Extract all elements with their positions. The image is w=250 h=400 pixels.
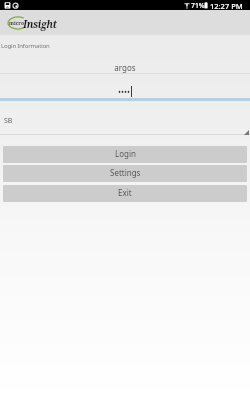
staticText: micro <box>9 20 25 27</box>
staticText: Exit <box>118 187 132 198</box>
button[interactable]: SB <box>0 109 250 135</box>
staticText: Login <box>115 148 136 159</box>
staticText: 12:27 PM <box>210 1 243 11</box>
button[interactable]: •••• <box>0 79 250 101</box>
staticText: Insight <box>23 17 57 31</box>
staticText: SB <box>4 116 13 126</box>
other: Saved <box>4 2 11 9</box>
button[interactable]: Settings <box>3 165 247 182</box>
staticText: argos <box>0 62 250 73</box>
staticText: 71% <box>191 1 205 10</box>
other: Sync <box>12 2 19 9</box>
staticText: Login Information <box>1 42 50 50</box>
staticText: •••• <box>118 86 131 97</box>
button[interactable]: argos <box>0 55 250 74</box>
button[interactable]: Login <box>3 146 247 163</box>
staticText: Settings <box>110 167 141 178</box>
button[interactable]: Exit <box>3 185 247 202</box>
